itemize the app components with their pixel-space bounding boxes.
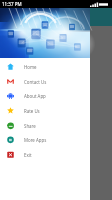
button[interactable]: Home bbox=[0, 59, 90, 74]
staticText: Home bbox=[24, 64, 37, 70]
button[interactable]: Exit bbox=[0, 147, 90, 162]
staticText: Contact Us bbox=[24, 79, 47, 85]
button[interactable]: More Apps bbox=[0, 132, 90, 147]
button[interactable]: Contact Us bbox=[0, 74, 90, 89]
staticText: Rate Us bbox=[24, 108, 40, 114]
button[interactable]: Share bbox=[0, 118, 90, 133]
staticText: Share bbox=[24, 123, 36, 129]
staticText: Exit bbox=[24, 152, 32, 158]
staticText: 11:37 PM bbox=[2, 1, 22, 7]
button[interactable]: About App bbox=[0, 88, 90, 103]
button[interactable]: Rate Us bbox=[0, 103, 90, 118]
staticText: More Apps bbox=[24, 137, 47, 143]
staticText: About App bbox=[24, 93, 46, 99]
